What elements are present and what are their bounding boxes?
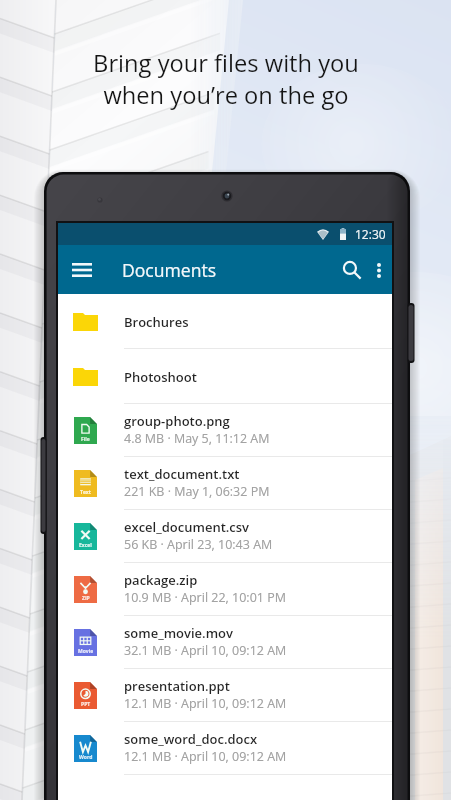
staticText: 56 KB · April 23, 10:43 AM xyxy=(124,536,273,553)
button[interactable]: Photoshoot xyxy=(58,349,392,404)
button[interactable]: ZIP xyxy=(58,563,392,616)
staticText: some_movie.mov xyxy=(124,624,233,642)
button[interactable]: File xyxy=(58,404,392,457)
button[interactable]: Brochures xyxy=(58,294,392,349)
staticText: Movie xyxy=(78,648,94,655)
button[interactable]: Movie xyxy=(58,616,392,669)
staticText: when you’re on the go xyxy=(103,79,349,111)
button[interactable]: More options xyxy=(362,253,396,287)
staticText: excel_document.csv xyxy=(124,518,250,536)
staticText: text_document.txt xyxy=(124,465,240,483)
staticText: ZIP xyxy=(82,595,90,602)
staticText: 12.1 MB · April 10, 09:12 AM xyxy=(124,695,287,712)
staticText: Brochures xyxy=(124,313,189,331)
button[interactable]: Open navigation menu xyxy=(65,253,99,287)
staticText: 221 KB · May 1, 06:32 PM xyxy=(124,483,270,500)
staticText: Excel xyxy=(79,542,92,549)
staticText: 12.1 MB · April 10, 09:12 AM xyxy=(124,748,287,765)
staticText: Photoshoot xyxy=(124,368,197,386)
button[interactable]: PPT xyxy=(58,669,392,722)
staticText: Text xyxy=(80,489,91,496)
button[interactable]: Word xyxy=(58,722,392,775)
staticText: group-photo.png xyxy=(124,412,230,430)
staticText: 12:30 xyxy=(355,226,386,242)
staticText: some_word_doc.docx xyxy=(124,730,258,748)
staticText: Documents xyxy=(122,258,217,282)
staticText: 10.9 MB · April 22, 10:01 PM xyxy=(124,589,286,606)
staticText: 32.1 MB · April 10, 09:12 AM xyxy=(124,642,287,659)
button[interactable]: Excel xyxy=(58,510,392,563)
button[interactable]: Text xyxy=(58,457,392,510)
staticText: Bring your files with you xyxy=(93,47,359,79)
staticText: PPT xyxy=(81,701,91,708)
staticText: presentation.ppt xyxy=(124,677,230,695)
staticText: package.zip xyxy=(124,571,198,589)
staticText: File xyxy=(81,436,90,443)
staticText: Word xyxy=(79,754,93,761)
staticText: 4.8 MB · May 5, 11:12 AM xyxy=(124,430,270,447)
button[interactable]: Search xyxy=(335,253,369,287)
